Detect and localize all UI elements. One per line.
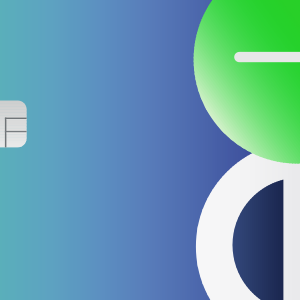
button[interactable]: Hide card [0, 0, 300, 300]
button[interactable]: Card details [0, 0, 300, 300]
